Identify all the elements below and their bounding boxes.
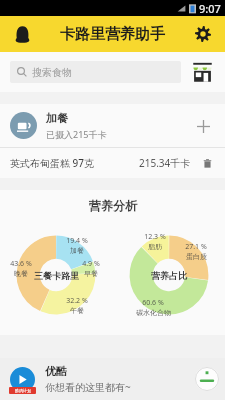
button[interactable]: Delete — [199, 155, 215, 171]
staticText: 32.2 % — [66, 296, 88, 306]
staticText: 12.3 % — [144, 232, 166, 242]
staticText: 三餐卡路里 — [34, 270, 79, 281]
staticText: 脂肪 — [148, 242, 162, 251]
staticText: 加餐 — [70, 246, 84, 255]
staticText: 60.6 % — [142, 298, 164, 308]
button[interactable]: Download — [193, 365, 221, 393]
staticText: 午餐 — [70, 306, 84, 315]
staticText: 晚餐 — [14, 269, 28, 278]
button[interactable]: 搜索食物 — [10, 61, 181, 83]
staticText: 蛋白质 — [186, 252, 207, 261]
staticText: 卡路里营养助手 — [60, 25, 165, 44]
staticText: 你想看的这里都有~ — [45, 380, 131, 394]
staticText: 19.4 % — [66, 236, 88, 246]
staticText: 搜索食物 — [32, 66, 72, 79]
staticText: 营养占比 — [151, 270, 187, 281]
staticText: 碳水化合物 — [136, 308, 171, 317]
staticText: 加餐 — [46, 111, 68, 125]
staticText: 英式布甸蛋糕 97克 — [10, 156, 95, 170]
staticText: 43.6 % — [10, 259, 32, 269]
staticText: 已摄入215千卡 — [46, 128, 107, 140]
staticText: 215.34千卡 — [139, 156, 191, 170]
staticText: 优酷 — [45, 364, 67, 378]
button[interactable]: Settings — [189, 20, 217, 48]
button[interactable]: 英式布甸蛋糕 97克 — [0, 148, 225, 178]
staticText: 早餐 — [84, 269, 98, 278]
staticText: 9:07 — [199, 1, 221, 16]
button[interactable]: Profile — [8, 20, 36, 48]
button[interactable]: Add food — [191, 114, 215, 138]
staticText: 酷鸡计划 — [15, 388, 31, 393]
button[interactable]: 加餐 — [0, 104, 225, 147]
staticText: 4.9 % — [82, 259, 100, 269]
staticText: 27.1 % — [185, 242, 207, 252]
staticText: 营养分析 — [89, 198, 137, 213]
button[interactable]: Store — [189, 59, 215, 85]
button[interactable]: 酷鸡计划 — [0, 358, 225, 400]
